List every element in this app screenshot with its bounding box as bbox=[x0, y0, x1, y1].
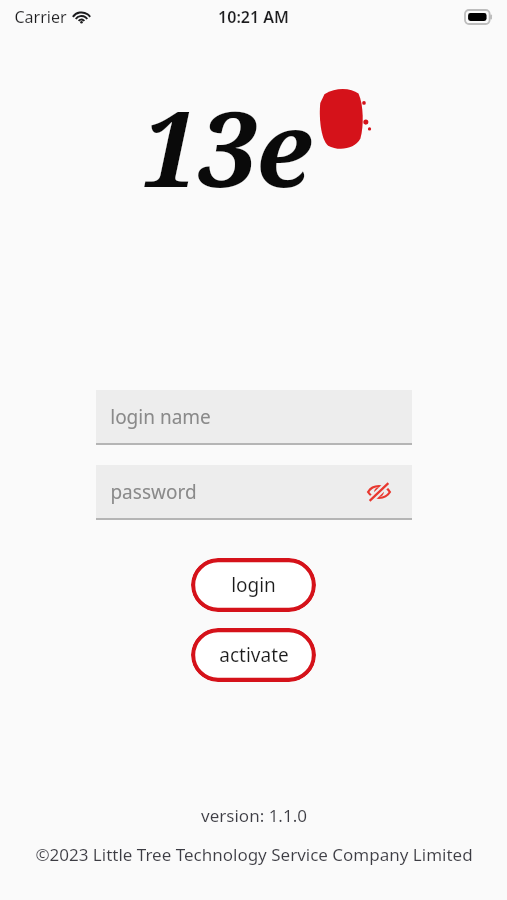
button[interactable]: password bbox=[96, 465, 412, 520]
button[interactable]: login name bbox=[96, 390, 412, 445]
staticText: 10:21 AM bbox=[218, 6, 289, 28]
staticText: login bbox=[231, 572, 276, 598]
button[interactable]: login bbox=[191, 558, 316, 612]
staticText: ©2023 Little Tree Technology Service Com… bbox=[35, 843, 473, 866]
button[interactable]: activate bbox=[191, 628, 316, 682]
staticText: Carrier bbox=[14, 6, 67, 28]
staticText: login name bbox=[110, 404, 211, 430]
staticText: version: 1.1.0 bbox=[201, 804, 307, 827]
button[interactable]: Show password bbox=[364, 477, 394, 507]
staticText: password bbox=[110, 479, 197, 505]
staticText: activate bbox=[219, 642, 289, 668]
staticText: 13e bbox=[140, 76, 312, 218]
